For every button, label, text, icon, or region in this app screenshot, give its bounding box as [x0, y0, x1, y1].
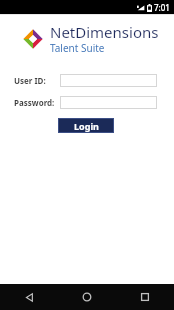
staticText: User ID:: [14, 75, 46, 86]
button[interactable]: Home: [58, 284, 116, 310]
button[interactable]: Login: [58, 118, 114, 133]
button[interactable]: [60, 96, 157, 109]
staticText: Talent Suite: [50, 41, 105, 55]
button[interactable]: Back: [0, 284, 58, 310]
staticText: 7:01: [154, 2, 170, 13]
staticText: Login: [74, 120, 99, 132]
staticText: Password:: [14, 97, 55, 108]
button[interactable]: [60, 74, 157, 87]
button[interactable]: Recent apps: [116, 284, 174, 310]
staticText: NetDimensions: [50, 22, 159, 42]
